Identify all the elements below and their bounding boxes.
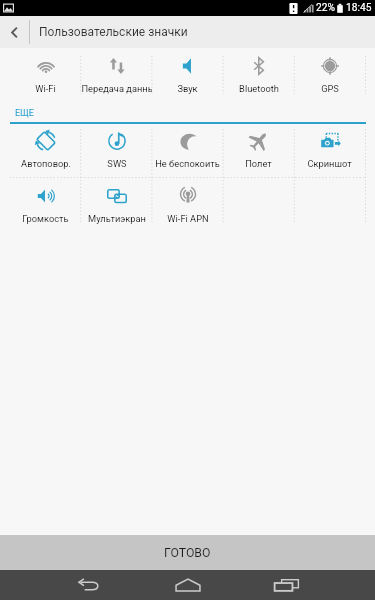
button[interactable]: Wi-Fi — [10, 55, 81, 95]
button[interactable]: Полет — [223, 130, 294, 170]
staticText: Не беспокоить — [155, 158, 220, 169]
staticText: Полет — [245, 158, 272, 169]
button[interactable]: Recent apps — [256, 570, 316, 600]
staticText: Звук — [177, 83, 198, 94]
button[interactable]: GPS — [294, 55, 365, 95]
button[interactable]: Скриншот — [294, 130, 365, 170]
button[interactable]: Передача данных — [81, 55, 152, 95]
staticText: Передача данных — [81, 83, 152, 94]
staticText: GPS — [321, 83, 339, 94]
staticText: Автоповор. — [21, 158, 71, 169]
staticText: SWS — [107, 158, 127, 169]
staticText: Мультиэкран — [88, 213, 146, 224]
staticText: Bluetooth — [239, 83, 279, 94]
staticText: Wi-Fi — [35, 83, 56, 94]
staticText: 18:45 — [346, 2, 372, 14]
button[interactable]: Back — [58, 570, 118, 600]
staticText: Скриншот — [307, 158, 352, 169]
staticText: ГОТОВО — [164, 546, 211, 560]
staticText: Пользовательские значки — [39, 25, 188, 39]
button[interactable]: Home — [158, 570, 218, 600]
staticText: ЕЩЕ — [15, 108, 34, 119]
staticText: 22% — [316, 2, 335, 14]
button[interactable]: SWS — [81, 130, 152, 170]
button[interactable]: Wi-Fi APN — [152, 185, 223, 225]
button[interactable]: Звук — [152, 55, 223, 95]
button[interactable]: Мультиэкран — [81, 185, 152, 225]
staticText: Громкость — [22, 213, 69, 224]
button[interactable]: ГОТОВО — [0, 535, 375, 570]
button[interactable]: Bluetooth — [223, 55, 294, 95]
staticText: Wi-Fi APN — [167, 213, 209, 224]
button[interactable]: Back — [0, 16, 29, 48]
button[interactable]: Автоповор. — [10, 130, 81, 170]
button[interactable]: Громкость — [10, 185, 81, 225]
button[interactable]: Не беспокоить — [152, 130, 223, 170]
